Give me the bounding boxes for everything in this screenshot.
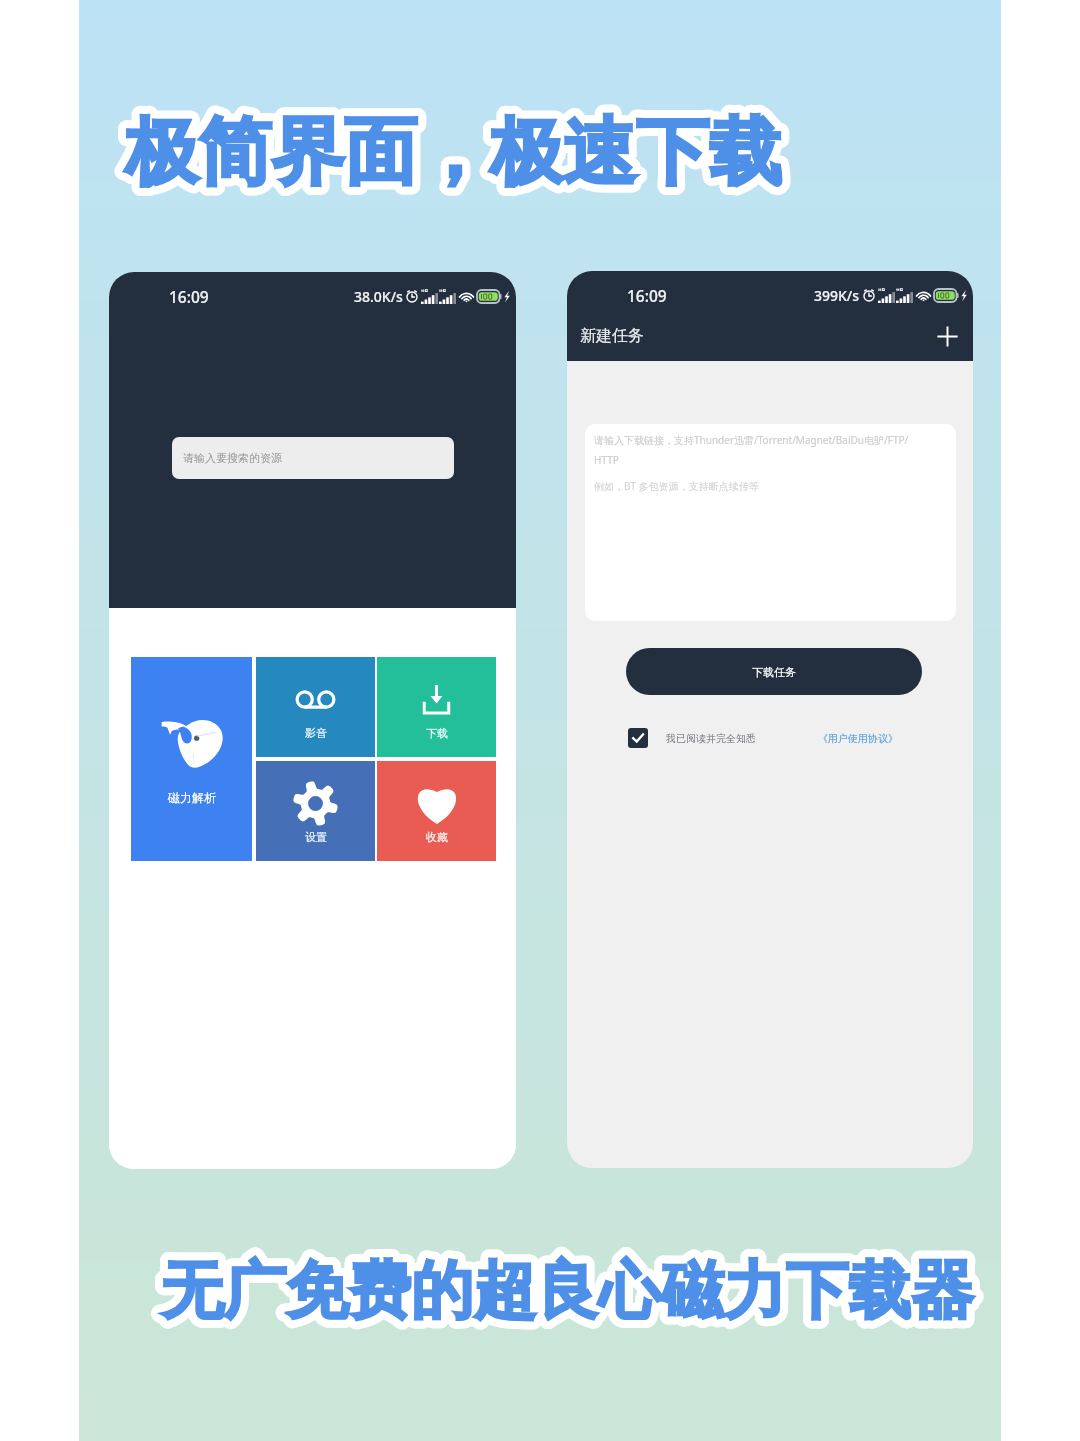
button[interactable]: 设置 <box>256 761 375 861</box>
button[interactable]: 《用户使用协议》 <box>818 732 898 745</box>
staticText: 我已阅读并完全知悉 <box>666 732 756 745</box>
staticText: 16:09 <box>169 286 209 307</box>
staticText: 例如，BT 多包资源，支持断点续传等 <box>594 479 759 493</box>
button[interactable]: 影音 <box>256 657 375 757</box>
staticText: 设置 <box>305 830 327 844</box>
staticText: 极简界面，极速下载 <box>125 107 782 199</box>
staticText: 下载任务 <box>752 665 796 679</box>
staticText: 请输入下载链接，支持Thunder迅雷/Torrent/Magnet/BaiDu… <box>594 433 921 467</box>
staticText: 下载 <box>426 726 448 740</box>
button[interactable]: 磁力解析 <box>131 657 252 861</box>
button[interactable]: 下载任务 <box>626 648 922 695</box>
button[interactable]: Agree to terms <box>628 728 648 748</box>
button[interactable]: 请输入要搜索的资源 <box>172 437 454 479</box>
staticText: 收藏 <box>426 830 448 844</box>
staticText: 请输入要搜索的资源 <box>183 451 282 465</box>
staticText: 38.0K/s <box>354 287 403 306</box>
staticText: 极简界面，极速下载 <box>125 107 782 199</box>
staticText: 影音 <box>305 726 327 740</box>
button[interactable]: 下载 <box>377 657 496 757</box>
button[interactable]: 收藏 <box>377 761 496 861</box>
staticText: 新建任务 <box>580 326 644 346</box>
staticText: 磁力解析 <box>168 790 216 805</box>
staticText: 399K/s <box>814 286 860 305</box>
staticText: 无广免费的超良心磁力下载器 <box>161 1252 974 1331</box>
staticText: 无广免费的超良心磁力下载器 <box>161 1252 974 1331</box>
button[interactable]: Add task <box>931 320 963 352</box>
staticText: 16:09 <box>627 285 667 306</box>
